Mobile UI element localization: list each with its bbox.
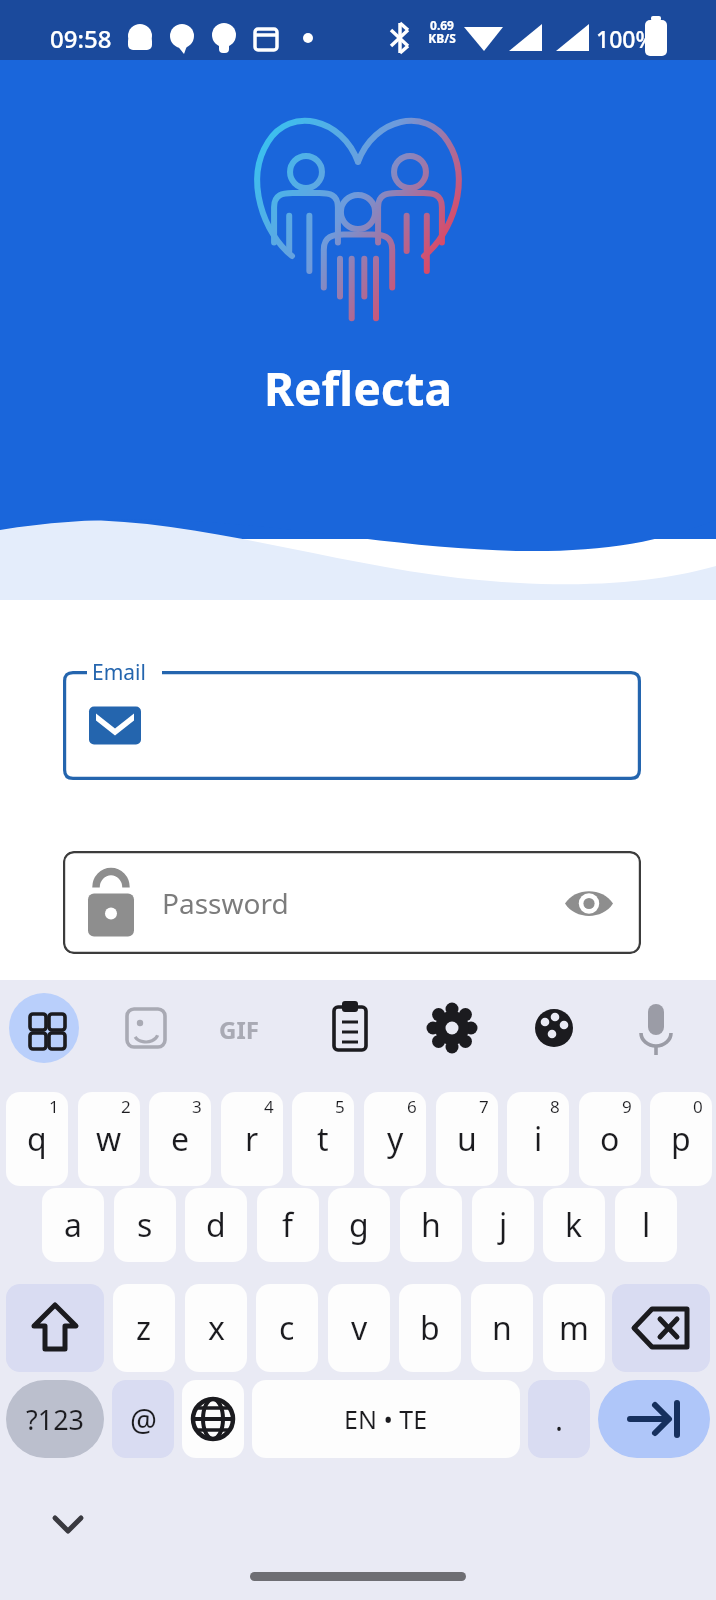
staticText: f [282,1203,294,1247]
staticText: Reflecta [0,357,716,420]
staticText: m [559,1306,589,1350]
staticText: 6 [407,1095,417,1118]
staticText: EN • TE [344,1402,428,1436]
button[interactable]: Themes [519,993,589,1063]
button[interactable]: r [221,1092,283,1186]
staticText: 100% [596,23,656,54]
staticText: d [206,1203,226,1247]
button[interactable] [63,671,641,780]
button[interactable]: g [328,1188,390,1262]
button[interactable]: n [471,1284,533,1372]
button[interactable]: Change language [182,1380,244,1458]
staticText: z [136,1306,152,1350]
button[interactable]: Shift [6,1284,104,1372]
button[interactable]: Hide keyboard [44,1500,92,1548]
button[interactable]: @ [112,1380,174,1458]
staticText: Email [92,658,146,687]
button[interactable]: Backspace [612,1284,710,1372]
button[interactable]: l [615,1188,677,1262]
staticText: b [420,1306,440,1350]
staticText: x [208,1306,225,1350]
button[interactable]: h [400,1188,462,1262]
staticText: l [642,1203,651,1247]
button[interactable]: Show password [559,873,619,933]
staticText: g [349,1203,369,1247]
staticText: i [534,1117,543,1161]
staticText: 5 [335,1095,345,1118]
button[interactable]: s [114,1188,176,1262]
button[interactable]: q [6,1092,68,1186]
button[interactable]: t [292,1092,354,1186]
button[interactable]: v [328,1284,390,1372]
button[interactable]: d [185,1188,247,1262]
staticText: a [64,1203,82,1247]
staticText: . [555,1399,564,1440]
button[interactable]: p [650,1092,712,1186]
button[interactable]: m [543,1284,605,1372]
button[interactable]: c [256,1284,318,1372]
staticText: j [499,1203,508,1247]
button[interactable]: Voice input [621,993,691,1063]
button[interactable]: y [364,1092,426,1186]
staticText: 09:58 [50,22,112,55]
staticText: u [457,1117,477,1161]
button[interactable]: Enter [598,1380,710,1458]
button[interactable]: . [528,1380,590,1458]
button[interactable]: Symbols [9,993,79,1063]
button[interactable]: EN • TE [252,1380,520,1458]
button[interactable]: e [149,1092,211,1186]
staticText: 8 [550,1095,560,1118]
staticText: ?123 [26,1401,85,1438]
button[interactable]: z [113,1284,175,1372]
staticText: 3 [192,1095,202,1118]
staticText: Password [162,884,289,922]
staticText: n [492,1306,512,1350]
staticText: c [279,1306,295,1350]
staticText: q [27,1117,47,1161]
staticText: o [600,1117,620,1161]
button[interactable]: x [185,1284,247,1372]
staticText: p [671,1117,691,1161]
staticText: 4 [264,1095,274,1118]
staticText: y [387,1117,404,1161]
staticText: t [317,1117,329,1161]
button[interactable]: a [42,1188,104,1262]
staticText: @ [130,1399,157,1440]
staticText: w [96,1117,122,1161]
staticText: 1 [49,1095,59,1118]
button[interactable]: u [436,1092,498,1186]
button[interactable]: w [78,1092,140,1186]
button[interactable]: i [507,1092,569,1186]
staticText: s [137,1203,153,1247]
button[interactable]: j [472,1188,534,1262]
staticText: 0 [693,1095,703,1118]
button[interactable]: Password [63,851,641,954]
staticText: 0.69 KB/S [428,17,456,47]
button[interactable]: Stickers [111,993,181,1063]
button[interactable]: Settings [417,993,487,1063]
staticText: 9 [622,1095,632,1118]
button[interactable]: o [579,1092,641,1186]
button[interactable]: ?123 [6,1380,104,1458]
button[interactable]: k [543,1188,605,1262]
staticText: e [171,1117,190,1161]
button[interactable]: f [257,1188,319,1262]
staticText: h [421,1203,441,1247]
button[interactable]: b [399,1284,461,1372]
staticText: v [351,1306,368,1350]
staticText: k [565,1203,583,1247]
button[interactable]: Clipboard [315,993,385,1063]
staticText: GIF [219,1013,259,1046]
staticText: r [245,1117,259,1161]
staticText: 7 [479,1095,489,1118]
button[interactable]: GIF [213,993,283,1063]
staticText: 2 [121,1095,131,1118]
